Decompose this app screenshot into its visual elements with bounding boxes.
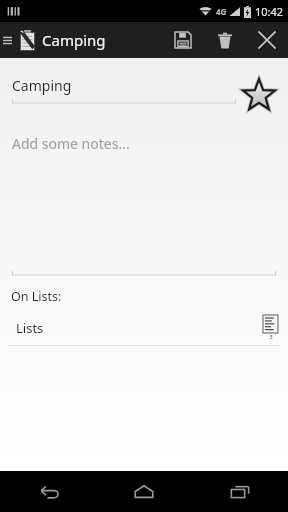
staticText: On Lists: [11,288,62,305]
button[interactable]: Delete [204,22,246,58]
button[interactable]: Add some notes... [12,134,276,276]
staticText: 10:42 [255,4,284,19]
button[interactable]: Lists [0,311,288,345]
button[interactable]: App icon [14,22,40,58]
button[interactable]: Favorite [238,74,280,116]
staticText: Camping [12,76,72,95]
staticText: 4G [216,6,227,17]
button[interactable]: Close [246,22,288,58]
button[interactable]: Camping [12,76,236,104]
button[interactable]: Navigation drawer [0,22,14,58]
staticText: Add some notes... [12,134,130,153]
button[interactable]: Save [162,22,204,58]
staticText: Lists [16,319,44,337]
button[interactable]: Recent apps [192,471,288,512]
button[interactable]: Home [96,471,192,512]
staticText: Camping [42,30,106,50]
staticText: 3 [269,333,273,341]
button[interactable]: Back [0,471,96,512]
